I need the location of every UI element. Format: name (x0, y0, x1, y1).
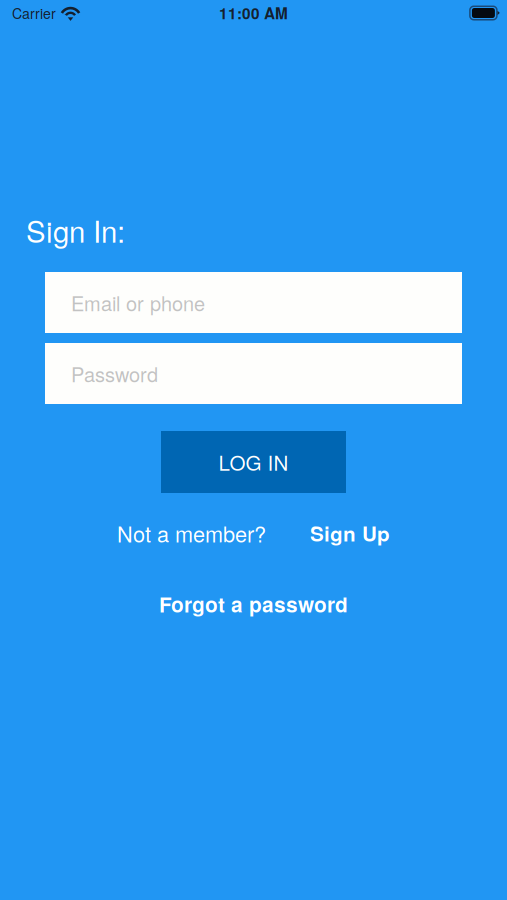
button[interactable]: Email or phone (45, 272, 462, 333)
staticText: Email or phone (71, 288, 205, 317)
button[interactable]: LOG IN (161, 431, 346, 493)
staticText: Sign In: (26, 209, 125, 251)
staticText: Not a member? (117, 517, 266, 548)
button[interactable]: Sign Up (310, 521, 390, 545)
staticText: 11:00 AM (219, 2, 288, 24)
button[interactable]: Password (45, 343, 462, 404)
staticText: Carrier (12, 3, 56, 23)
button[interactable]: Forgot a password (159, 592, 348, 616)
staticText: Forgot a password (159, 589, 348, 619)
staticText: Password (71, 359, 158, 388)
staticText: LOG IN (218, 447, 288, 477)
staticText: Sign Up (310, 518, 390, 548)
